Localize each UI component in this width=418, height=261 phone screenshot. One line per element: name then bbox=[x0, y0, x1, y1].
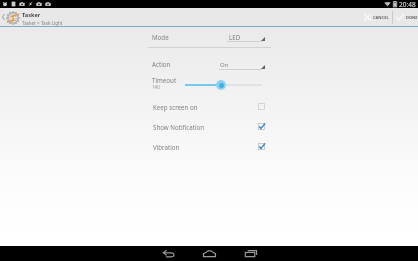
staticText: Tasker bbox=[22, 11, 41, 19]
button[interactable]: Vibration bbox=[148, 143, 271, 155]
button[interactable]: Show Notification bbox=[148, 123, 271, 135]
staticText: CANCEL bbox=[373, 15, 389, 20]
button[interactable]: Home bbox=[195, 246, 223, 261]
button[interactable]: Recent apps bbox=[237, 246, 265, 261]
staticText: 20:48 bbox=[399, 0, 416, 8]
staticText: Vibration bbox=[153, 143, 180, 151]
staticText: Show Notification bbox=[153, 123, 205, 131]
button[interactable]: On bbox=[219, 60, 265, 72]
button[interactable]: CANCEL bbox=[362, 8, 392, 26]
button[interactable]: Keep screen on bbox=[148, 103, 271, 115]
button[interactable]: Back bbox=[1, 9, 6, 25]
button[interactable]: Back bbox=[154, 246, 182, 261]
staticText: DONE bbox=[406, 15, 418, 20]
staticText: Action bbox=[152, 60, 171, 68]
staticText: Mode bbox=[152, 33, 169, 41]
staticText: On bbox=[220, 61, 229, 69]
button[interactable] bbox=[185, 79, 265, 90]
staticText: Tasker > Task Light bbox=[22, 20, 63, 26]
button[interactable]: LED bbox=[227, 31, 265, 43]
button[interactable]: DONE bbox=[393, 8, 418, 26]
staticText: Keep screen on bbox=[153, 103, 198, 111]
staticText: 140 bbox=[152, 84, 160, 90]
staticText: LED bbox=[229, 33, 241, 41]
staticText: Timeout bbox=[152, 76, 177, 84]
